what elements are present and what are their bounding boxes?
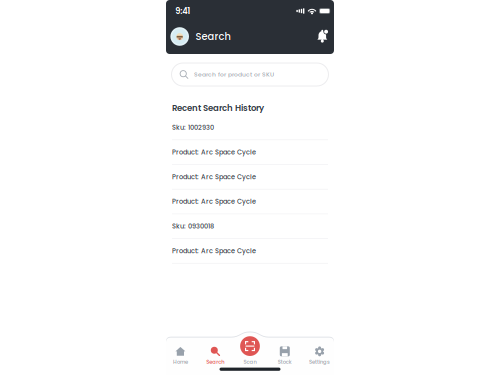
staticText: Home (173, 358, 188, 366)
staticText: Settings (309, 358, 330, 366)
staticText: Scan (243, 358, 256, 366)
button[interactable]: Product: Arc Space Cycle (172, 140, 328, 165)
staticText: Search (196, 30, 231, 43)
button[interactable]: Profile (170, 27, 189, 46)
staticText: Product: Arc Space Cycle (172, 197, 256, 206)
button[interactable]: Settings (302, 343, 337, 368)
button[interactable]: Scan (233, 343, 267, 368)
button[interactable]: Product: Arc Space Cycle (172, 239, 328, 264)
staticText: Product: Arc Space Cycle (172, 246, 256, 255)
staticText: Product: Arc Space Cycle (172, 148, 256, 157)
button[interactable]: Notifications (313, 26, 332, 47)
button[interactable]: Home (163, 343, 198, 368)
staticText: Search (206, 358, 224, 366)
staticText: Stock (278, 358, 292, 366)
staticText: Sku: 0930018 (172, 222, 214, 231)
button[interactable]: Search for product or SKU (171, 63, 328, 86)
button[interactable]: Sku: 1002930 (172, 115, 328, 140)
button[interactable]: Product: Arc Space Cycle (172, 165, 328, 189)
button[interactable]: Stock (267, 343, 302, 368)
staticText: Sku: 1002930 (172, 123, 214, 132)
staticText: Recent Search History (172, 102, 264, 114)
button[interactable]: Product: Arc Space Cycle (172, 189, 328, 214)
staticText: Search for product or SKU (194, 70, 274, 79)
staticText: 9:41 (175, 5, 190, 17)
button[interactable]: Scan (240, 336, 260, 356)
button[interactable]: Search (198, 343, 233, 368)
button[interactable]: Sku: 0930018 (172, 214, 328, 239)
staticText: Product: Arc Space Cycle (172, 172, 256, 181)
